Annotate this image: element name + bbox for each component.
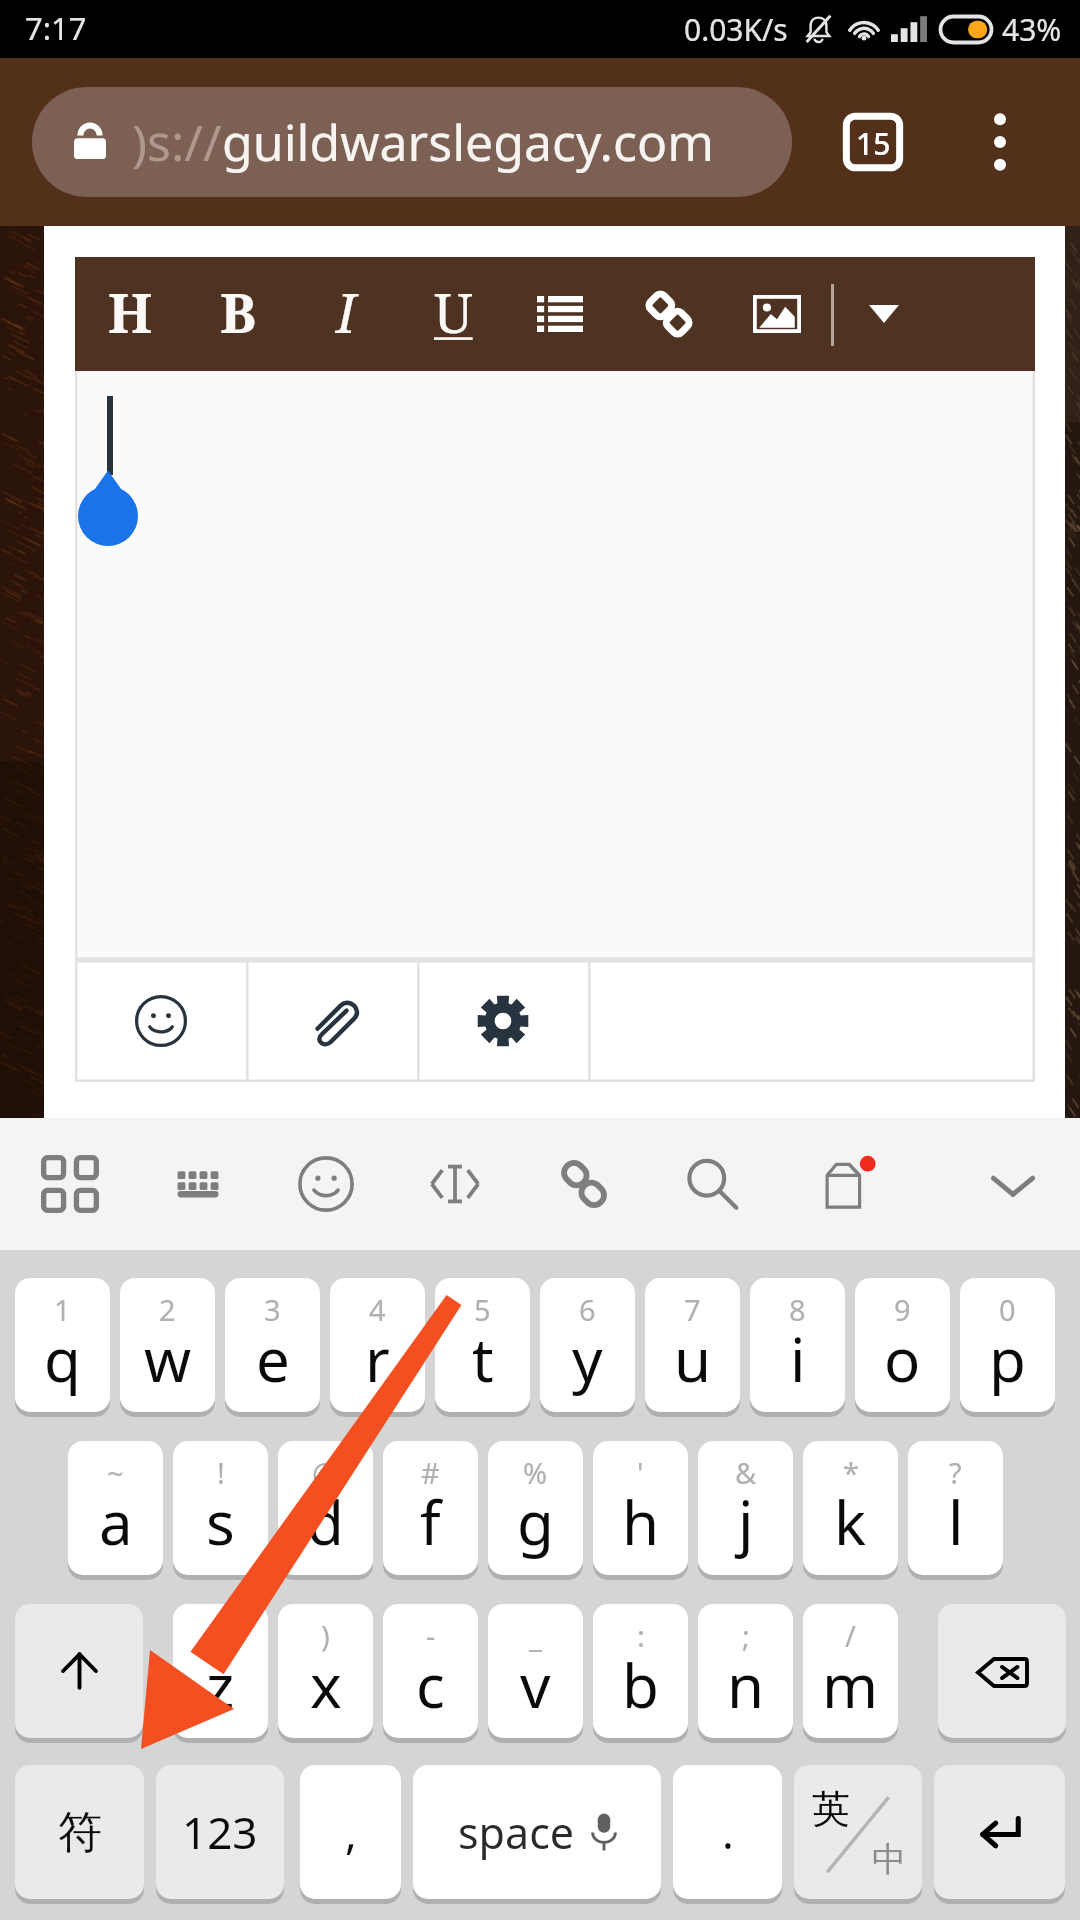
staticText: & bbox=[735, 1453, 757, 1492]
button[interactable]: Text editing bbox=[395, 1118, 515, 1250]
button[interactable]: Shift bbox=[15, 1604, 143, 1738]
button[interactable]: Backspace bbox=[938, 1604, 1066, 1738]
button[interactable]: U bbox=[401, 257, 505, 371]
staticText: 7:17 bbox=[25, 7, 87, 49]
button[interactable]: Insert emoji bbox=[75, 960, 246, 1082]
button[interactable]: Insert image bbox=[725, 257, 829, 371]
button[interactable]: Switch input language bbox=[794, 1765, 922, 1899]
button[interactable]: & bbox=[698, 1441, 793, 1575]
staticText: c bbox=[416, 1644, 445, 1726]
staticText: 9 bbox=[894, 1290, 911, 1329]
staticText: H bbox=[108, 275, 153, 349]
staticText: r bbox=[365, 1318, 390, 1400]
staticText: )s:// bbox=[132, 108, 222, 176]
button[interactable]: )s:// bbox=[32, 87, 792, 197]
staticText: 7 bbox=[684, 1290, 701, 1329]
button[interactable]: ? bbox=[908, 1441, 1003, 1575]
button[interactable]: Switch tabs, 15 open bbox=[842, 112, 904, 172]
button[interactable]: # bbox=[383, 1441, 478, 1575]
button[interactable]: 123 bbox=[156, 1765, 284, 1899]
staticText: ) bbox=[321, 1616, 330, 1655]
staticText: 英 bbox=[812, 1785, 850, 1833]
button[interactable]: , bbox=[300, 1765, 401, 1899]
button[interactable]: ' bbox=[593, 1441, 688, 1575]
staticText: . bbox=[722, 1802, 734, 1862]
staticText: k bbox=[834, 1481, 867, 1563]
staticText: s bbox=[206, 1481, 235, 1563]
button[interactable]: 6 bbox=[540, 1278, 635, 1412]
button[interactable]: Settings bbox=[417, 960, 588, 1082]
button[interactable]: 4 bbox=[330, 1278, 425, 1412]
button[interactable]: . bbox=[673, 1765, 782, 1899]
button[interactable]: @ bbox=[278, 1441, 373, 1575]
staticText: B bbox=[220, 275, 257, 349]
staticText: b bbox=[622, 1644, 659, 1726]
button[interactable]: I bbox=[294, 257, 398, 371]
button[interactable]: Store bbox=[788, 1118, 908, 1250]
staticText: 0 bbox=[999, 1290, 1016, 1329]
staticText: e bbox=[256, 1318, 290, 1400]
button[interactable]: 1 bbox=[15, 1278, 110, 1412]
button[interactable]: Clipboard bbox=[524, 1118, 644, 1250]
button[interactable]: - bbox=[383, 1604, 478, 1738]
staticText: t bbox=[472, 1318, 494, 1400]
staticText: v bbox=[520, 1644, 551, 1726]
staticText: 中 bbox=[872, 1838, 906, 1881]
staticText: ? bbox=[949, 1453, 962, 1492]
staticText: i bbox=[790, 1318, 806, 1400]
button[interactable]: 7 bbox=[645, 1278, 740, 1412]
button[interactable]: B bbox=[186, 257, 290, 371]
button[interactable]: More formatting options bbox=[832, 257, 936, 371]
button[interactable]: Keyboard layout bbox=[138, 1118, 258, 1250]
button[interactable]: * bbox=[803, 1441, 898, 1575]
button[interactable]: Apps bbox=[10, 1118, 130, 1250]
staticText: space bbox=[458, 1803, 575, 1862]
button[interactable]: : bbox=[593, 1604, 688, 1738]
staticText: 5 bbox=[474, 1290, 491, 1329]
button[interactable]: ; bbox=[698, 1604, 793, 1738]
staticText: guildwarslegacy.com bbox=[222, 108, 714, 176]
button[interactable]: _ bbox=[488, 1604, 583, 1738]
button[interactable]: 符 bbox=[15, 1765, 144, 1899]
button[interactable]: % bbox=[488, 1441, 583, 1575]
button[interactable]: Emoji bbox=[266, 1118, 386, 1250]
button[interactable]: Bulleted list bbox=[508, 257, 612, 371]
button[interactable]: More options bbox=[965, 108, 1035, 176]
staticText: 3 bbox=[264, 1290, 281, 1329]
staticText: ' bbox=[637, 1453, 644, 1492]
staticText: y bbox=[572, 1318, 603, 1400]
staticText: 0.03K/s bbox=[684, 9, 788, 50]
button[interactable]: Enter bbox=[934, 1765, 1065, 1899]
button[interactable]: 8 bbox=[750, 1278, 845, 1412]
button[interactable]: ~ bbox=[68, 1441, 163, 1575]
staticText: m bbox=[822, 1644, 879, 1726]
staticText: 8 bbox=[789, 1290, 806, 1329]
button[interactable]: z bbox=[173, 1604, 268, 1738]
button[interactable]: Hide keyboard bbox=[953, 1118, 1073, 1250]
staticText: a bbox=[99, 1481, 133, 1563]
button[interactable]: ) bbox=[278, 1604, 373, 1738]
staticText: 2 bbox=[159, 1290, 176, 1329]
staticText: - bbox=[426, 1616, 436, 1655]
staticText: # bbox=[421, 1453, 440, 1492]
button[interactable]: 0 bbox=[960, 1278, 1055, 1412]
staticText: _ bbox=[529, 1616, 542, 1655]
staticText: j bbox=[738, 1481, 754, 1563]
button[interactable]: Search bbox=[652, 1118, 772, 1250]
button[interactable]: space bbox=[413, 1765, 661, 1899]
staticText: o bbox=[884, 1318, 921, 1400]
button[interactable]: 5 bbox=[435, 1278, 530, 1412]
button[interactable]: Insert link bbox=[617, 257, 721, 371]
button[interactable]: 2 bbox=[120, 1278, 215, 1412]
button[interactable]: Attach file bbox=[246, 960, 417, 1082]
button[interactable]: 9 bbox=[855, 1278, 950, 1412]
staticText: x bbox=[310, 1644, 342, 1726]
button[interactable]: 3 bbox=[225, 1278, 320, 1412]
button[interactable]: ! bbox=[173, 1441, 268, 1575]
button[interactable]: H bbox=[78, 257, 182, 371]
button[interactable]: / bbox=[803, 1604, 898, 1738]
staticText: / bbox=[845, 1616, 856, 1655]
staticText: u bbox=[674, 1318, 712, 1400]
staticText: d bbox=[307, 1481, 344, 1563]
staticText: 123 bbox=[182, 1802, 258, 1862]
